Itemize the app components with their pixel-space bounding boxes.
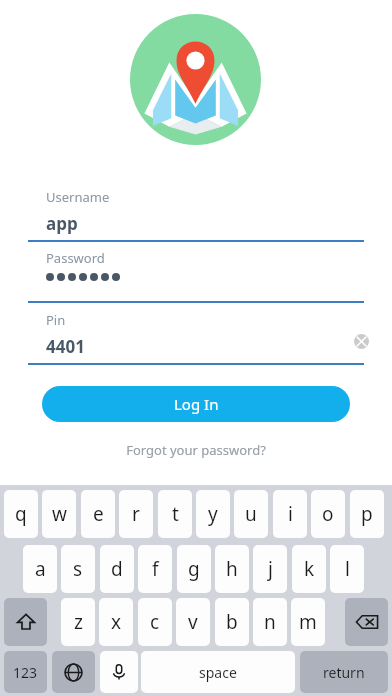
button[interactable]: s: [61, 545, 95, 593]
button[interactable]: w: [42, 490, 76, 538]
button[interactable]: i: [273, 490, 307, 538]
staticText: Forgot your password?: [126, 441, 266, 459]
staticText: Username: [46, 188, 110, 206]
button[interactable]: z: [61, 598, 95, 646]
staticText: l: [345, 556, 350, 582]
button[interactable]: d: [100, 545, 134, 593]
staticText: Log In: [174, 394, 219, 414]
button[interactable]: h: [215, 545, 249, 593]
staticText: Password: [46, 249, 105, 267]
staticText: h: [226, 556, 238, 582]
button[interactable]: a: [23, 545, 57, 593]
staticText: d: [111, 556, 123, 582]
button[interactable]: Forgot your password?: [108, 438, 284, 462]
staticText: b: [226, 609, 238, 635]
button[interactable]: b: [215, 598, 249, 646]
staticText: return: [323, 663, 365, 682]
staticText: t: [172, 501, 179, 527]
staticText: app: [46, 212, 78, 235]
button[interactable]: Switch keyboard: [52, 651, 95, 693]
staticText: n: [264, 609, 276, 635]
button[interactable]: e: [81, 490, 115, 538]
staticText: 4401: [46, 335, 85, 358]
button[interactable]: Shift: [4, 598, 47, 646]
button[interactable]: y: [196, 490, 230, 538]
button[interactable]: c: [138, 598, 172, 646]
staticText: f: [152, 556, 159, 582]
staticText: k: [304, 556, 315, 582]
staticText: Pin: [46, 311, 66, 329]
button[interactable]: q: [4, 490, 38, 538]
staticText: e: [93, 501, 104, 527]
button[interactable]: o: [311, 490, 345, 538]
button[interactable]: k: [292, 545, 326, 593]
button[interactable]: m: [291, 598, 325, 646]
staticText: y: [208, 501, 218, 527]
staticText: u: [245, 501, 257, 527]
button[interactable]: Log In: [42, 386, 350, 422]
staticText: g: [188, 556, 200, 582]
button[interactable]: j: [253, 545, 287, 593]
staticText: p: [361, 501, 373, 527]
staticText: s: [73, 556, 83, 582]
staticText: m: [299, 609, 317, 635]
button[interactable]: l: [330, 545, 364, 593]
staticText: v: [188, 609, 198, 635]
button[interactable]: u: [234, 490, 268, 538]
staticText: r: [132, 501, 140, 527]
button[interactable]: Dictate: [100, 651, 138, 693]
button[interactable]: f: [138, 545, 172, 593]
button[interactable]: g: [177, 545, 211, 593]
staticText: q: [15, 501, 27, 527]
button[interactable]: p: [350, 490, 384, 538]
button[interactable]: t: [158, 490, 192, 538]
staticText: o: [322, 501, 334, 527]
staticText: j: [268, 556, 273, 582]
button[interactable]: x: [99, 598, 133, 646]
button[interactable]: space: [141, 651, 295, 693]
button[interactable]: n: [253, 598, 287, 646]
staticText: i: [288, 501, 293, 527]
staticText: c: [150, 609, 160, 635]
staticText: a: [35, 556, 46, 582]
staticText: w: [52, 501, 67, 527]
button[interactable]: r: [119, 490, 153, 538]
button[interactable]: Backspace: [345, 598, 388, 646]
staticText: 123: [13, 663, 38, 682]
button[interactable]: v: [176, 598, 210, 646]
button[interactable]: Clear pin: [350, 330, 372, 352]
staticText: z: [74, 609, 83, 635]
staticText: x: [111, 609, 122, 635]
staticText: space: [199, 663, 237, 682]
button[interactable]: Return: [300, 651, 388, 693]
button[interactable]: Numbers: [4, 651, 47, 693]
